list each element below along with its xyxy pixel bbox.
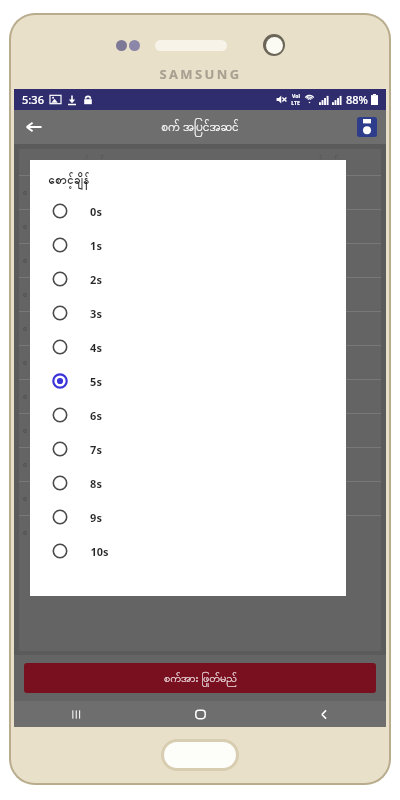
staticText: 3s <box>90 306 102 321</box>
staticText: ဧ <box>22 390 28 403</box>
staticText: SAMSUNG <box>159 65 242 83</box>
staticText: ဧ <box>22 220 28 233</box>
staticText: ဧ <box>22 356 28 369</box>
staticText: 7s <box>90 442 102 457</box>
staticText: 5s <box>90 374 102 389</box>
button[interactable]: 3s <box>30 296 346 330</box>
staticText: ဧ <box>22 322 28 335</box>
staticText: 2s <box>90 272 102 287</box>
staticText: Vol <box>292 93 300 100</box>
staticText: 4s <box>90 340 102 355</box>
button[interactable]: 0s <box>30 194 346 228</box>
button[interactable]: 2s <box>30 262 346 296</box>
button[interactable]: 9s <box>30 500 346 534</box>
button[interactable]: Back <box>19 112 49 142</box>
staticText: 0s <box>90 204 102 219</box>
button[interactable]: Back <box>262 701 386 727</box>
button[interactable]: 8s <box>30 466 346 500</box>
button[interactable]: စက်အား ဖြုတ်မည် <box>24 663 376 693</box>
staticText: ဧဧဧဧာက်ကန် ၂ <box>287 154 346 170</box>
staticText: ဧဧဧဧာက်ကန် ၁ <box>53 154 113 170</box>
staticText: ဧ <box>22 492 28 505</box>
staticText: 8s <box>90 476 102 491</box>
staticText: 1s <box>90 238 102 253</box>
button[interactable]: Recents <box>14 701 138 727</box>
staticText: ဧ <box>22 186 28 199</box>
button[interactable]: 10s <box>30 534 346 568</box>
staticText: စက်အား ဖြုတ်မည် <box>164 670 237 687</box>
staticText: ဧ <box>22 288 28 301</box>
staticText: 9s <box>90 510 102 525</box>
button[interactable]: 5s <box>30 364 346 398</box>
staticText: LTE <box>291 100 300 106</box>
staticText: ဧ <box>22 254 28 267</box>
staticText: 6s <box>90 408 102 423</box>
staticText: ဧ <box>22 526 28 539</box>
button[interactable]: 7s <box>30 432 346 466</box>
button[interactable]: 4s <box>30 330 346 364</box>
staticText: ဧ <box>22 458 28 471</box>
button[interactable]: 6s <box>30 398 346 432</box>
button[interactable]: Save <box>356 116 378 138</box>
button[interactable]: 1s <box>30 228 346 262</box>
staticText: စက် အပြင်အဆင် <box>161 118 239 137</box>
staticText: 10s <box>90 544 109 559</box>
staticText: ဧ <box>22 424 28 437</box>
staticText: 5:36 <box>22 92 44 107</box>
staticText: စောင့်ချိန် <box>48 172 90 190</box>
button[interactable]: Home <box>138 701 262 727</box>
staticText: 88% <box>346 92 368 107</box>
